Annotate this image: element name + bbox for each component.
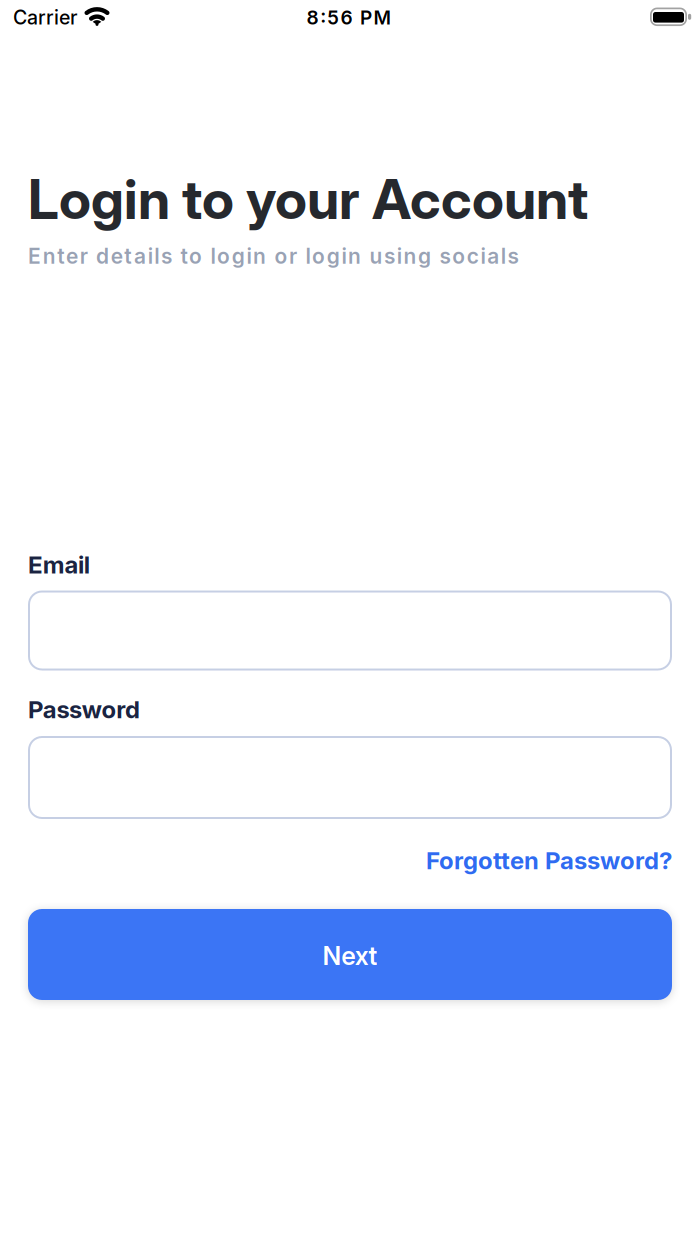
- staticText: Login to your Account: [28, 166, 588, 232]
- staticText: Password: [28, 695, 140, 724]
- staticText: 8:56 PM: [307, 6, 391, 29]
- staticText: Carrier: [13, 6, 78, 29]
- staticText: Forgotten Password?: [426, 846, 672, 875]
- staticText: Enter details to login or login using so…: [28, 243, 518, 269]
- staticText: Next: [322, 941, 377, 971]
- staticText: Email: [28, 550, 90, 579]
